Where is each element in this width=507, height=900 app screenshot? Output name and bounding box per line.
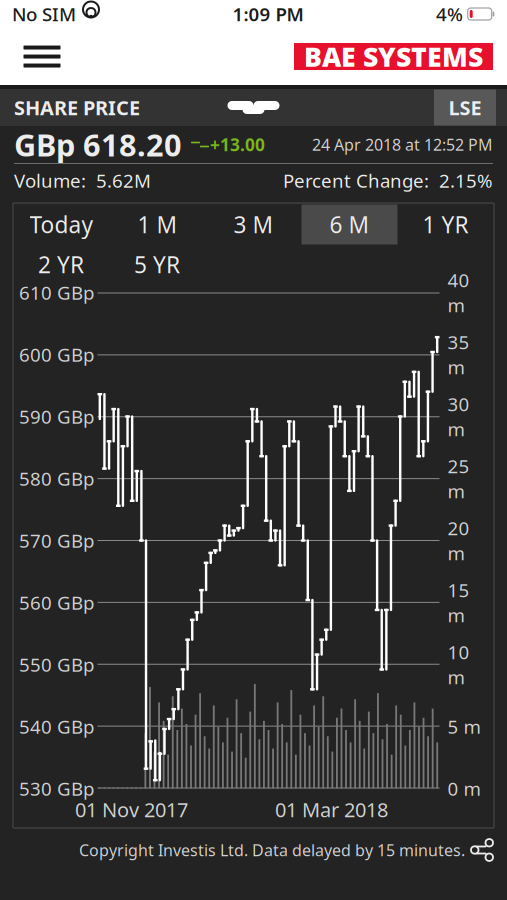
staticText: Percent Change: 2.15% [283,168,493,193]
button[interactable]: BAE Systems home [294,43,493,70]
button[interactable]: 2 YR [13,244,109,284]
staticText: 530 GBp [19,776,94,801]
staticText: GBp 618.20 [14,124,182,165]
staticText: 560 GBp [19,590,94,615]
button[interactable]: LSE [434,89,496,125]
button[interactable]: 5 YR [109,244,205,284]
staticText: Volume: 5.62M [14,168,151,193]
staticText: 1 M [137,209,177,239]
staticText: 24 Apr 2018 at 12:52 PM [312,134,493,155]
button[interactable]: Menu [14,33,70,79]
staticText: 4% [436,2,463,26]
button[interactable]: 3 M [205,204,301,244]
button[interactable]: 1 M [109,204,205,244]
staticText: 540 GBp [19,714,94,739]
staticText: 20 m [447,516,469,565]
button[interactable]: 6 M [301,204,397,244]
staticText: 5 m [447,714,480,739]
button[interactable]: Collapse share price panel [223,97,283,117]
staticText: 40 m [447,268,469,317]
button[interactable]: Today [13,204,109,244]
button[interactable]: 1 YR [397,204,493,244]
staticText: SHARE PRICE [14,94,140,121]
staticText: 570 GBp [19,528,94,553]
staticText: 610 GBp [19,280,94,305]
staticText: Copyright Investis Ltd. Data delayed by … [79,839,465,861]
staticText: 01 Mar 2018 [275,796,388,823]
staticText: 35 m [447,330,469,379]
staticText: 550 GBp [19,652,94,677]
staticText: 600 GBp [19,342,94,367]
staticText: 6 M [329,209,369,239]
staticText: 0 m [447,776,480,801]
button[interactable]: Share [465,833,499,867]
staticText: 3 M [233,209,273,239]
staticText: 10 m [447,640,469,689]
staticText: No SIM [12,2,76,26]
staticText: 01 Nov 2017 [75,796,188,823]
staticText: 5 YR [134,249,180,279]
staticText: Today [29,209,93,239]
staticText: 2 YR [38,249,84,279]
staticText: LSE [448,94,481,121]
staticText: 1:09 PM [232,2,303,26]
staticText: 590 GBp [19,404,94,429]
staticText: +13.00 [210,133,265,156]
staticText: 15 m [447,578,469,627]
staticText: 30 m [447,392,469,441]
staticText: BAE SYSTEMS [304,39,483,74]
staticText: 25 m [447,454,469,503]
staticText: 1 YR [422,209,468,239]
staticText: 580 GBp [19,466,94,491]
